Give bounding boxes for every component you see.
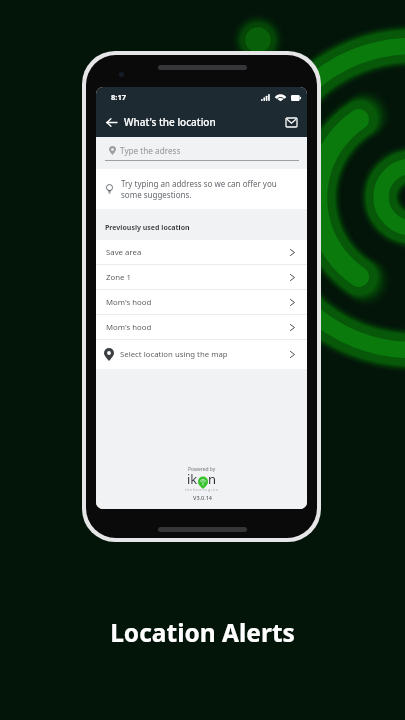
staticText: Try typing an address so we can offer yo…	[121, 178, 295, 200]
staticText: Select location using the map	[120, 349, 228, 360]
staticText: Mom's hood	[106, 322, 152, 333]
staticText: technologies	[185, 487, 219, 492]
staticText: Powered by	[188, 466, 216, 473]
staticText: Zone 1	[106, 272, 131, 283]
button[interactable]: Back	[103, 114, 119, 130]
staticText: n	[208, 470, 217, 488]
button[interactable]: Messages	[282, 113, 300, 131]
staticText: Location Alerts	[110, 616, 295, 649]
staticText: Type the adress	[120, 145, 181, 156]
button[interactable]: Mom's hood	[96, 315, 307, 339]
staticText: Previously used location	[105, 223, 190, 233]
staticText: 8:17	[111, 92, 126, 102]
staticText: Save area	[106, 247, 142, 258]
staticText: Mom's hood	[106, 297, 152, 308]
button[interactable]: Mom's hood	[96, 290, 307, 314]
staticText: What's the location	[124, 115, 216, 129]
button[interactable]: Select location using the map	[96, 340, 307, 369]
staticText: ik	[187, 470, 198, 488]
button[interactable]: Save area	[96, 240, 307, 264]
staticText: V3.0.14	[193, 494, 212, 501]
button[interactable]: Zone 1	[96, 265, 307, 289]
